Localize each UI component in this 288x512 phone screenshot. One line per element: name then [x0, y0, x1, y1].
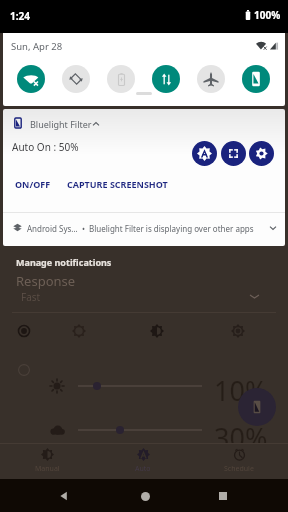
button[interactable]: Recents: [207, 480, 239, 512]
button[interactable]: Settings: [249, 141, 274, 166]
staticText: Auto: [135, 464, 151, 474]
staticText: 10%: [214, 372, 268, 409]
staticText: Android Sys... • Bluelight Filter is dis…: [27, 223, 254, 234]
button[interactable]: Back: [48, 480, 80, 512]
button[interactable]: Quick setting 4: [152, 65, 180, 93]
button[interactable]: Quick setting 5: [197, 65, 225, 93]
staticText: 30%: [214, 419, 268, 456]
staticText: Auto On : 50%: [12, 140, 79, 154]
staticText: Manual: [35, 464, 60, 474]
staticText: Sun, Apr 28: [11, 40, 63, 53]
button[interactable]: Schedule: [207, 444, 271, 480]
button[interactable]: Selected: [11, 318, 37, 344]
button[interactable]: Auto: [111, 444, 175, 480]
button[interactable]: Quick setting 3: [107, 65, 135, 93]
button[interactable]: Capture screenshot: [221, 141, 246, 166]
button[interactable]: Home: [129, 480, 161, 512]
button[interactable]: Manage notifications: [16, 256, 112, 268]
button[interactable]: Quick setting 1: [17, 65, 45, 93]
staticText: Bluelight Filter: [30, 118, 92, 130]
button[interactable]: Toggle filter: [238, 388, 276, 426]
staticText: CAPTURE SCREENSHOT: [67, 178, 168, 190]
button[interactable]: Full brightness: [225, 318, 251, 344]
button[interactable]: ON/OFF: [12, 175, 54, 193]
staticText: ON/OFF: [15, 178, 51, 190]
button[interactable]: CAPTURE SCREENSHOT: [64, 175, 171, 193]
staticText: 1:24: [10, 9, 30, 23]
staticText: Fast: [21, 290, 41, 304]
button[interactable]: Quick setting 2: [62, 65, 90, 93]
staticText: Response: [16, 272, 76, 290]
button[interactable]: Low brightness: [66, 318, 92, 344]
button[interactable]: Auto: [192, 141, 217, 166]
button[interactable]: Manual: [15, 444, 79, 480]
button[interactable]: Quick setting 6: [242, 65, 270, 93]
staticText: 100%: [254, 8, 281, 22]
staticText: Schedule: [224, 464, 254, 474]
button[interactable]: Half brightness: [144, 318, 170, 344]
